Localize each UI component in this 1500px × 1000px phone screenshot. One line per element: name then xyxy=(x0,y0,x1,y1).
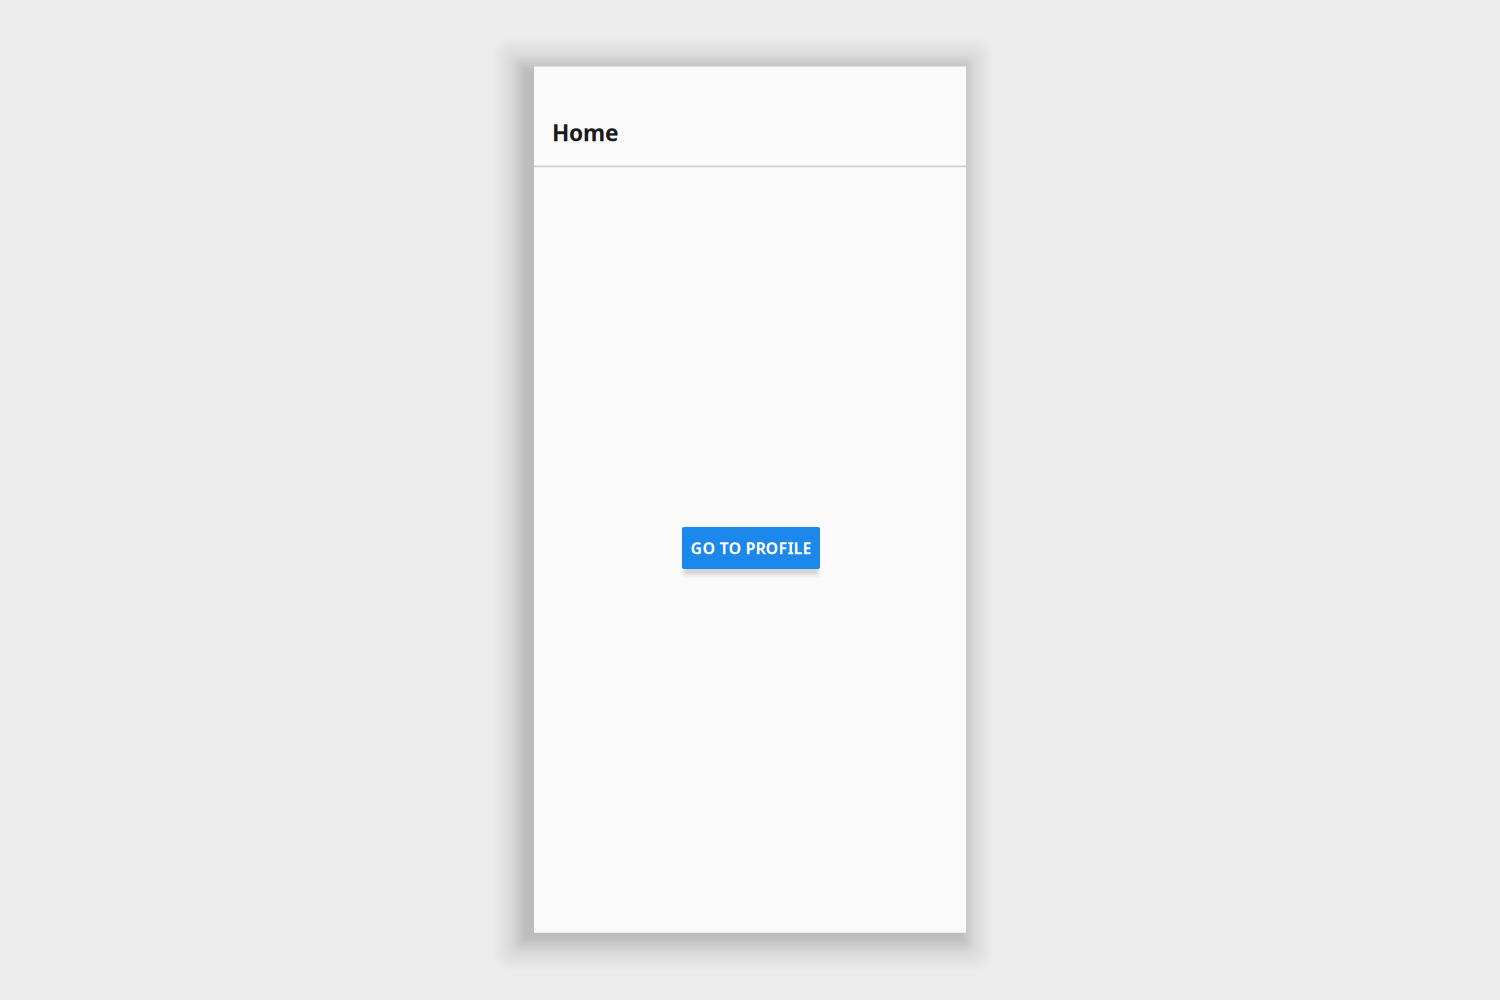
button[interactable]: GO TO PROFILE xyxy=(669,517,831,583)
staticText: Home xyxy=(552,117,619,147)
staticText: GO TO PROFILE xyxy=(690,537,811,559)
